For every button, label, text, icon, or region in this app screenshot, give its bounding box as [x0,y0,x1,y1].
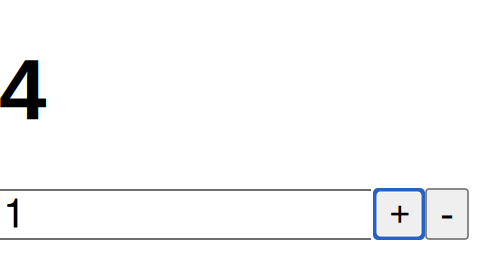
staticText: 4 [0,42,46,137]
button[interactable]: + [373,188,425,240]
staticText: 1 [3,180,26,239]
staticText: - [440,179,454,241]
button[interactable]: - [426,189,468,239]
staticText: + [388,179,411,235]
